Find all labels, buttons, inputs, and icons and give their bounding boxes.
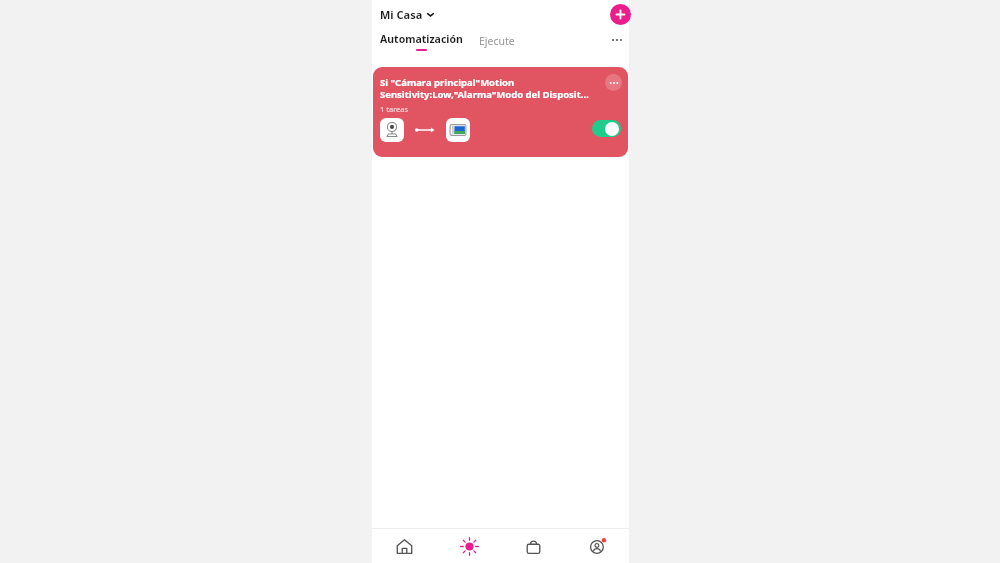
button[interactable]: Ejecute [476, 32, 518, 50]
button[interactable]: Device [446, 118, 470, 142]
staticText: Si "Cámara principal"Motion Sensitivity:… [380, 76, 594, 101]
staticText: Mi Casa [380, 7, 423, 22]
button[interactable]: Profile [565, 529, 629, 563]
button[interactable]: Home [372, 529, 437, 563]
staticText: Automatización [380, 32, 463, 46]
button[interactable]: More options [608, 31, 625, 48]
button[interactable]: Automatización [379, 30, 464, 53]
button[interactable]: Device [380, 118, 404, 142]
button[interactable]: Automation [437, 529, 501, 563]
staticText: 1 tareas [380, 104, 409, 114]
staticText: Ejecute [479, 34, 515, 48]
button[interactable]: Automation options [605, 74, 622, 91]
button[interactable]: Mi Casa [379, 5, 436, 24]
button[interactable]: Enable automation [592, 120, 621, 137]
button[interactable]: Shop [501, 529, 565, 563]
button[interactable]: Add automation [610, 4, 631, 25]
button[interactable]: Si "Cámara principal"Motion Sensitivity:… [373, 67, 628, 157]
